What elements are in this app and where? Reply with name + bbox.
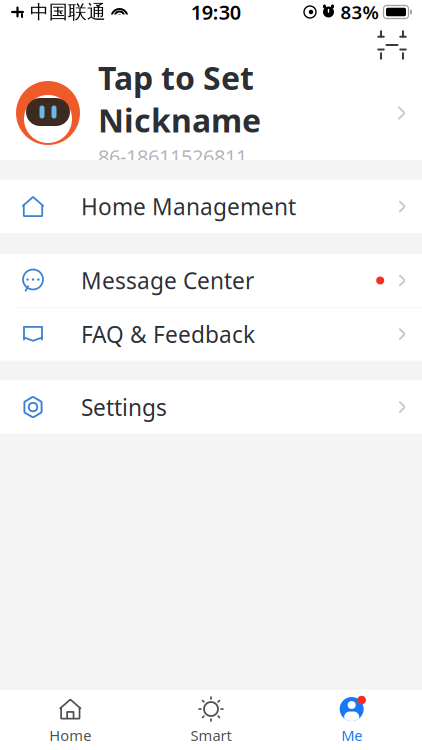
staticText: 86-18611526811 [98, 143, 247, 170]
button[interactable]: Tap to Set Nickname [0, 66, 422, 160]
staticText: Me [341, 725, 362, 745]
button[interactable]: Scan QR code [372, 25, 412, 65]
button[interactable]: Message Center [0, 254, 422, 307]
staticText: Home [49, 725, 91, 745]
staticText: 19:30 [191, 0, 241, 25]
staticText: Message Center [81, 265, 254, 295]
staticText: Home Management [81, 191, 296, 221]
staticText: 83% [340, 0, 378, 24]
button[interactable]: FAQ & Feedback [0, 308, 422, 361]
staticText: FAQ & Feedback [81, 319, 255, 349]
staticText: Smart [190, 725, 231, 745]
staticText: Tap to Set Nickname [98, 56, 261, 141]
staticText: 中国联通 [30, 0, 106, 23]
button[interactable]: Home [0, 689, 141, 750]
button[interactable]: Home Management [0, 180, 422, 233]
button[interactable]: Me [281, 689, 422, 750]
staticText: Settings [81, 392, 167, 422]
button[interactable]: Settings [0, 381, 422, 434]
button[interactable]: Smart [141, 689, 281, 750]
